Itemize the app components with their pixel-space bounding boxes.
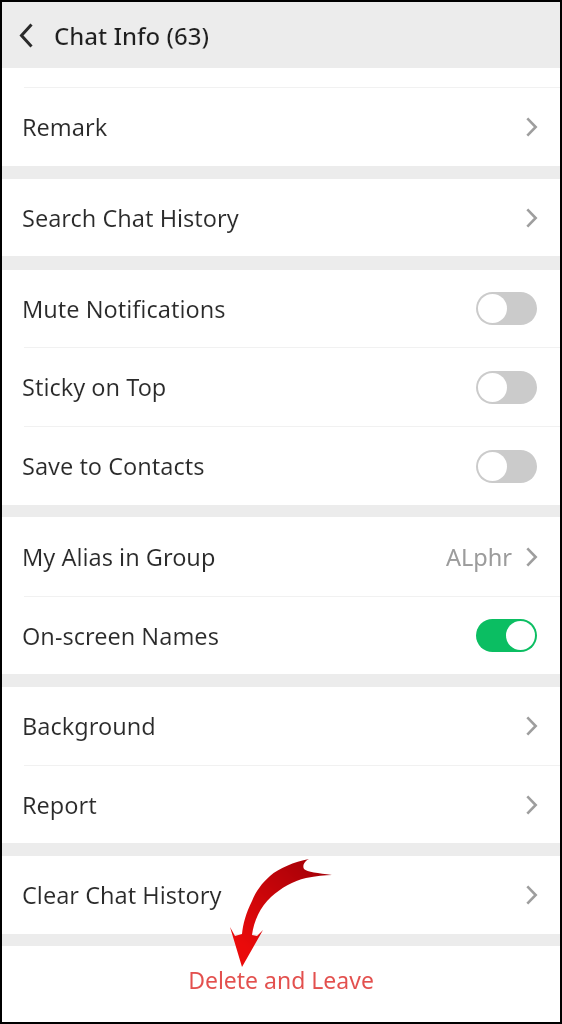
staticText: Clear Chat History (22, 879, 222, 911)
button[interactable]: Off (476, 371, 537, 404)
button[interactable]: Off (476, 292, 537, 325)
button[interactable]: Save to Contacts (2, 427, 560, 505)
staticText: Remark (22, 111, 108, 143)
staticText: ALphr (446, 541, 513, 573)
staticText: Sticky on Top (22, 371, 167, 403)
button[interactable]: On-screen Names (2, 597, 560, 674)
button[interactable]: Sticky on Top (2, 348, 560, 426)
button[interactable]: Clear Chat History (2, 856, 560, 934)
staticText: Search Chat History (22, 202, 239, 234)
button[interactable]: My Alias in Group (2, 517, 560, 596)
staticText: Report (22, 789, 97, 821)
staticText: Chat Info (63) (54, 19, 209, 52)
staticText: On-screen Names (22, 620, 219, 652)
staticText: My Alias in Group (22, 541, 216, 573)
button[interactable]: Remark (2, 88, 560, 166)
staticText: Save to Contacts (22, 450, 205, 482)
button[interactable]: Off (476, 450, 537, 483)
button[interactable]: Mute Notifications (2, 270, 560, 347)
staticText: Mute Notifications (22, 293, 226, 325)
staticText: Delete and Leave (188, 964, 374, 995)
staticText: Background (22, 710, 156, 742)
button[interactable]: Background (2, 687, 560, 765)
button[interactable]: Delete and Leave (2, 964, 560, 995)
button[interactable]: Search Chat History (2, 179, 560, 256)
button[interactable]: On (476, 619, 537, 652)
button[interactable]: Report (2, 766, 560, 843)
button[interactable]: Back (2, 2, 50, 68)
